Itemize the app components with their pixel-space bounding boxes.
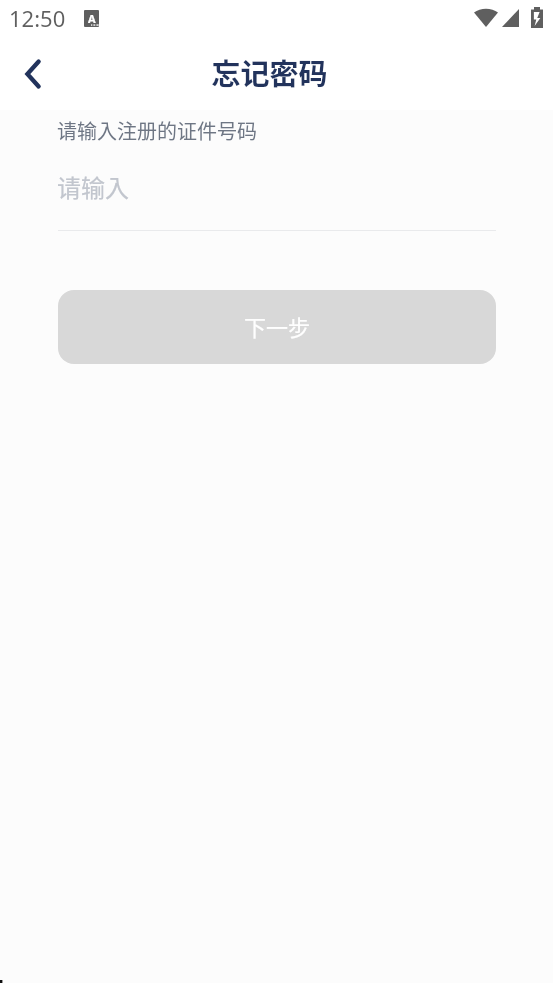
staticText: 12:50	[9, 3, 66, 33]
button[interactable]: Back	[8, 48, 60, 100]
staticText: 忘记密码	[211, 51, 328, 93]
button[interactable]: 下一步	[58, 290, 496, 364]
staticText: 请输入	[57, 169, 129, 204]
button[interactable]: 请输入	[57, 158, 495, 214]
staticText: 下一步	[244, 310, 311, 342]
staticText: A	[88, 11, 96, 26]
staticText: 请输入注册的证件号码	[57, 116, 257, 145]
